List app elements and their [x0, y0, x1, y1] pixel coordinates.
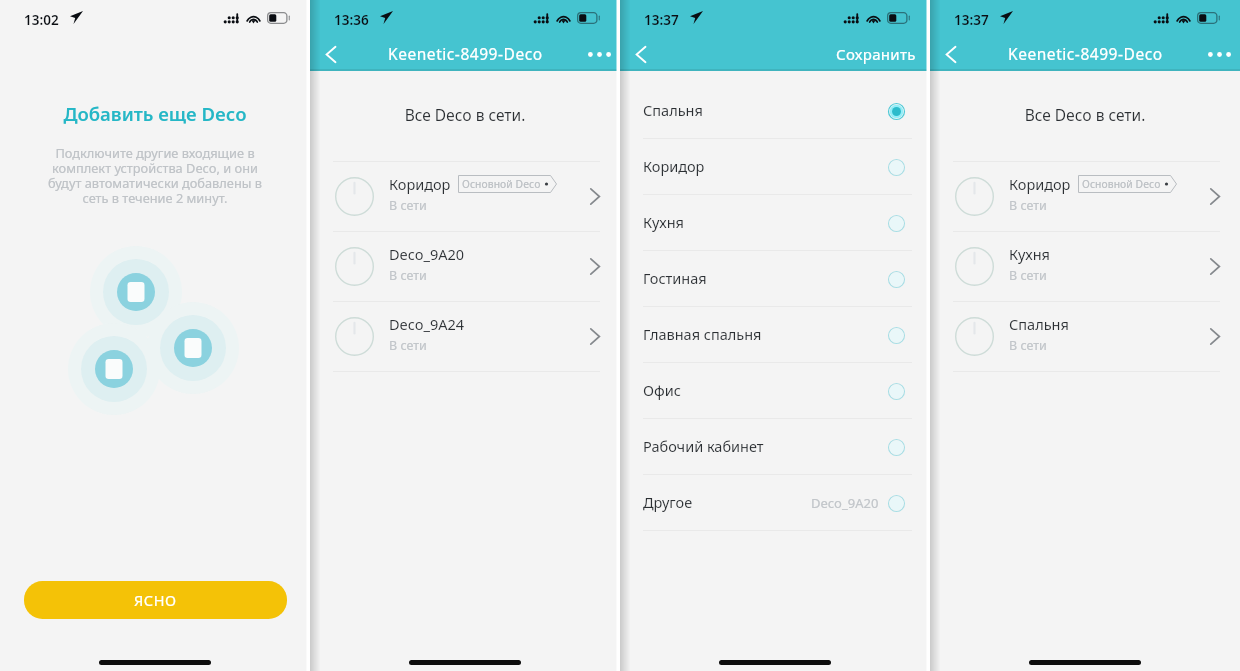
staticText: Сохранить	[836, 44, 916, 64]
staticText: Гостиная	[643, 268, 707, 288]
staticText: 13:36	[334, 11, 369, 29]
button[interactable]: Deco_9A24	[310, 302, 620, 371]
staticText: Кухня	[643, 212, 684, 232]
staticText: Deco_9A20	[389, 244, 465, 264]
button[interactable]: Главная спальня	[620, 307, 930, 363]
staticText: Коридор	[643, 156, 705, 176]
button[interactable]: Спальня	[620, 83, 930, 139]
staticText: Все Deco в сети.	[310, 104, 620, 125]
staticText: Подключите другие входящие в комплект ус…	[0, 144, 310, 207]
staticText: Рабочий кабинет	[643, 436, 764, 456]
staticText: Офис	[643, 380, 681, 400]
staticText: В сети	[389, 267, 427, 284]
staticText: В сети	[1009, 267, 1047, 284]
staticText: Основной Deco	[462, 177, 541, 191]
staticText: Deco_9A24	[389, 314, 465, 334]
staticText: В сети	[389, 337, 427, 354]
staticText: Основной Deco	[1082, 177, 1161, 191]
button[interactable]: Офис	[620, 363, 930, 419]
button[interactable]: Back	[620, 38, 662, 71]
button[interactable]: Кухня	[620, 195, 930, 251]
button[interactable]: Коридор	[930, 162, 1240, 231]
button[interactable]: Коридор	[310, 162, 620, 231]
staticText: Keenetic-8499-Deco	[1008, 43, 1163, 64]
staticText: В сети	[1009, 337, 1047, 354]
button[interactable]: Другое	[620, 475, 930, 531]
staticText: Спальня	[1009, 314, 1069, 334]
staticText: 13:37	[644, 11, 679, 29]
staticText: Спальня	[643, 100, 703, 120]
staticText: 13:37	[954, 11, 989, 29]
staticText: Все Deco в сети.	[930, 104, 1240, 125]
staticText: Другое	[643, 492, 693, 512]
button[interactable]: Спальня	[930, 302, 1240, 371]
staticText: Deco_9A20	[811, 494, 879, 512]
button[interactable]: Коридор	[620, 139, 930, 195]
staticText: Кухня	[1009, 244, 1050, 264]
staticText: ЯСНО	[134, 590, 177, 610]
button[interactable]: Гостиная	[620, 251, 930, 307]
staticText: В сети	[389, 197, 427, 214]
button[interactable]: Сохранить	[832, 41, 920, 69]
staticText: 13:02	[24, 11, 59, 29]
button[interactable]: ЯСНО	[24, 581, 287, 619]
button[interactable]: More options	[578, 38, 620, 71]
button[interactable]: Кухня	[930, 232, 1240, 301]
button[interactable]: Back	[930, 38, 972, 71]
staticText: В сети	[1009, 197, 1047, 214]
button[interactable]: Рабочий кабинет	[620, 419, 930, 475]
button[interactable]: Deco_9A20	[310, 232, 620, 301]
staticText: Главная спальня	[643, 324, 762, 344]
staticText: Keenetic-8499-Deco	[388, 43, 543, 64]
button[interactable]: Back	[310, 38, 352, 71]
button[interactable]: More options	[1198, 38, 1240, 71]
staticText: Коридор	[1009, 174, 1071, 194]
staticText: Добавить еще Deco	[0, 101, 310, 126]
staticText: Коридор	[389, 174, 451, 194]
